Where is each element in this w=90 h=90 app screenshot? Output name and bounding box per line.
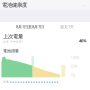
staticText: 100% [71, 56, 79, 60]
staticText: 0% [71, 74, 75, 77]
staticText: 電池健康度 [2, 2, 27, 8]
staticText: 充電 [3, 80, 9, 84]
staticText: 電池用量 [3, 48, 19, 53]
button[interactable]: 8月1日至8月7日 [16, 24, 44, 29]
staticText: 8月1日至8月7日 [16, 24, 44, 29]
staticText: 50% [71, 65, 77, 68]
staticText: 過去7天 [60, 24, 74, 29]
staticText: ⌄ [82, 3, 85, 7]
staticText: 46% [79, 38, 87, 43]
button[interactable]: 更多 [81, 2, 86, 8]
button[interactable]: 過去7天 [60, 24, 74, 29]
staticText: 今天 下午3:47 [3, 40, 23, 43]
staticText: 上次電量 [3, 33, 23, 40]
